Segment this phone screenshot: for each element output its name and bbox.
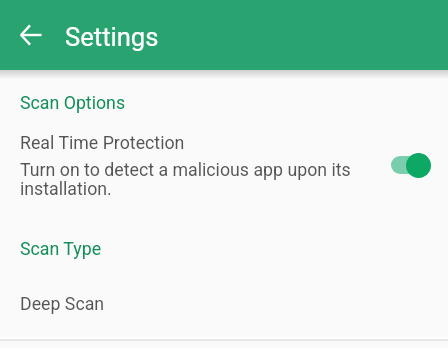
staticText: Scan Options [20,93,126,114]
other: Real Time Protection, on [388,148,438,182]
staticText: Deep Scan [20,294,105,315]
staticText: Scan Type [20,239,102,260]
staticText: Real Time Protection [20,133,185,154]
staticText: Settings [65,22,159,52]
staticText: Turn on to detect a malicious app upon i… [20,160,351,199]
button[interactable]: Navigate up [7,11,55,59]
button[interactable]: Deep Scan [0,278,448,330]
button[interactable]: Real Time Protection [0,121,448,203]
